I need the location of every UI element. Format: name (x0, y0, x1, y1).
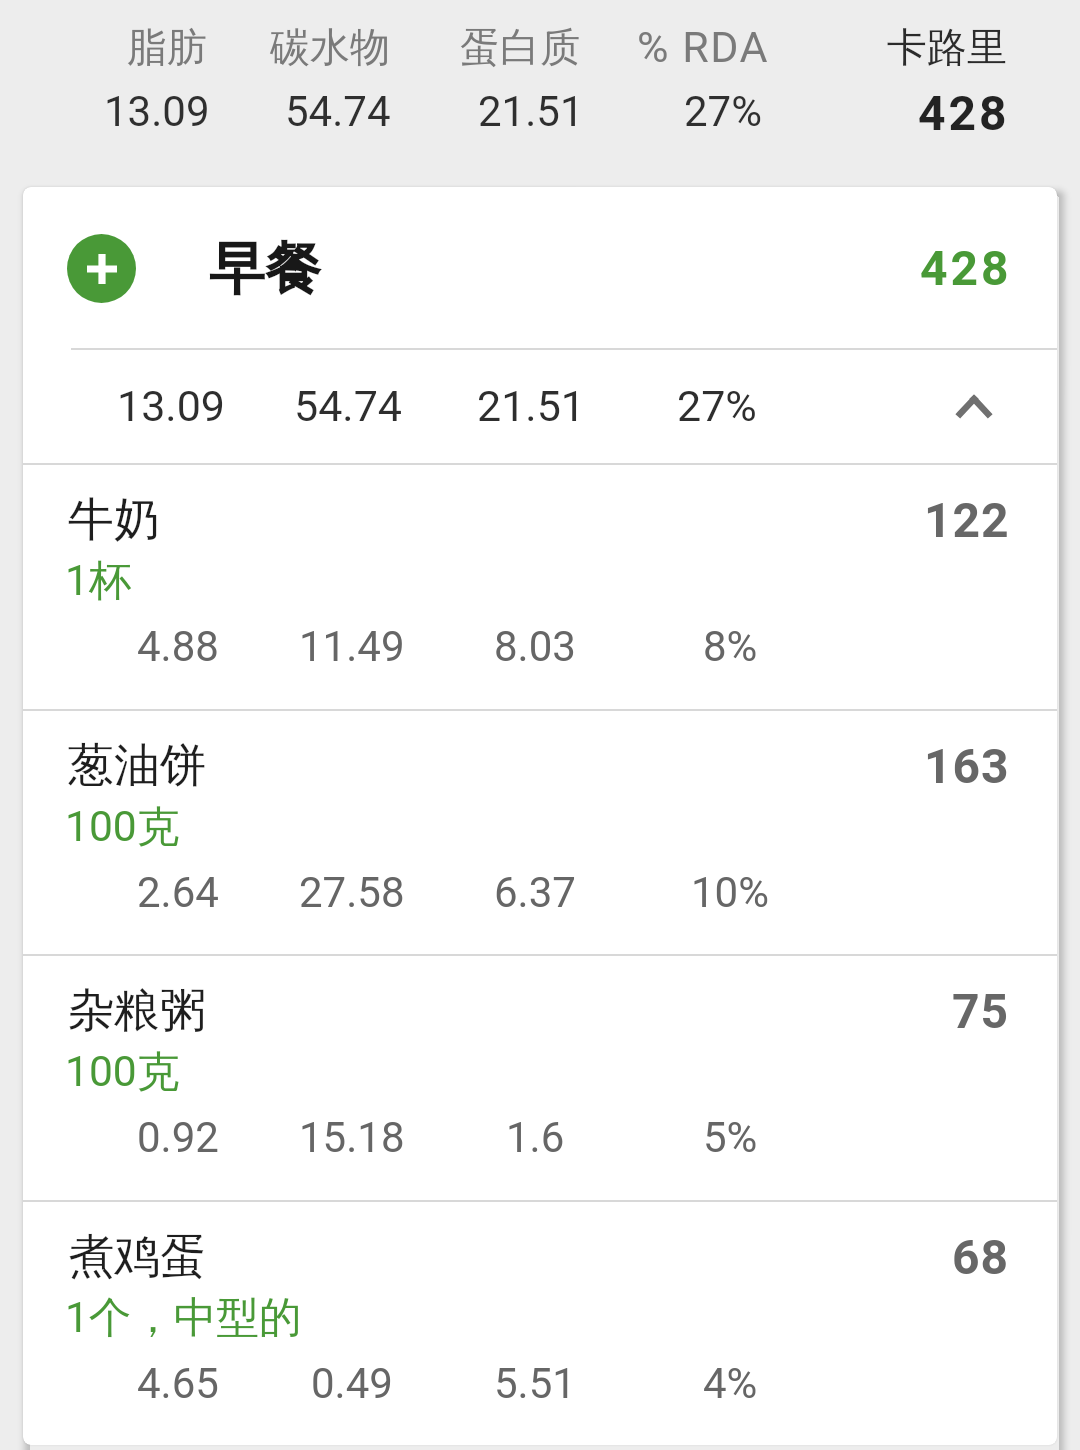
staticText: 68 (952, 1229, 1010, 1285)
button[interactable]: 煮鸡蛋 (23, 1200, 1057, 1445)
staticText: 脂肪 (127, 22, 207, 72)
button[interactable]: 牛奶 (23, 463, 1057, 709)
staticText: 煮鸡蛋 (68, 1228, 206, 1286)
staticText: 牛奶 (68, 491, 160, 549)
staticText: % RDA (637, 22, 769, 72)
button[interactable]: 葱油饼 (23, 709, 1057, 955)
staticText: 葱油饼 (68, 737, 206, 795)
staticText: 1.6 (506, 1113, 565, 1162)
staticText: 2.64 (137, 868, 219, 917)
staticText: 100克 (65, 1045, 180, 1099)
staticText: 13.09 (104, 87, 210, 136)
staticText: 54.74 (294, 381, 403, 431)
staticText: 0.49 (311, 1359, 393, 1408)
staticText: 428 (920, 240, 1012, 296)
staticText: 4% (703, 1359, 758, 1408)
staticText: 0.92 (137, 1113, 219, 1162)
staticText: 5% (703, 1113, 758, 1162)
staticText: 杂粮粥 (68, 982, 206, 1040)
staticText: 1杯 (65, 554, 132, 608)
button[interactable]: Add food (67, 234, 136, 303)
staticText: 21.51 (477, 381, 586, 431)
button[interactable]: Add food (23, 187, 1057, 348)
staticText: 122 (924, 492, 1010, 548)
staticText: 卡路里 (887, 22, 1007, 72)
staticText: 428 (918, 85, 1010, 141)
staticText: 54.74 (285, 87, 391, 136)
staticText: 6.37 (494, 868, 576, 917)
staticText: 15.18 (299, 1113, 405, 1162)
staticText: 8.03 (494, 622, 576, 671)
staticText: 4.88 (137, 622, 219, 671)
staticText: 早餐 (209, 234, 321, 305)
button[interactable]: 13.09 (23, 348, 1057, 463)
button[interactable]: 杂粮粥 (23, 954, 1057, 1200)
staticText: 蛋白质 (460, 22, 580, 72)
staticText: 100克 (65, 800, 180, 854)
staticText: 27% (684, 87, 762, 136)
staticText: 75 (952, 983, 1010, 1039)
button[interactable]: Collapse (939, 371, 1009, 441)
staticText: 27% (677, 381, 757, 431)
staticText: 13.09 (117, 381, 226, 431)
staticText: 1个，中型的 (65, 1291, 302, 1345)
staticText: 5.51 (494, 1359, 576, 1408)
staticText: 4.65 (137, 1359, 219, 1408)
staticText: 碳水物 (270, 22, 390, 72)
staticText: 163 (924, 738, 1010, 794)
staticText: 11.49 (299, 622, 405, 671)
staticText: 10% (691, 868, 769, 917)
staticText: 8% (703, 622, 758, 671)
staticText: 21.51 (478, 87, 584, 136)
staticText: 27.58 (299, 868, 405, 917)
